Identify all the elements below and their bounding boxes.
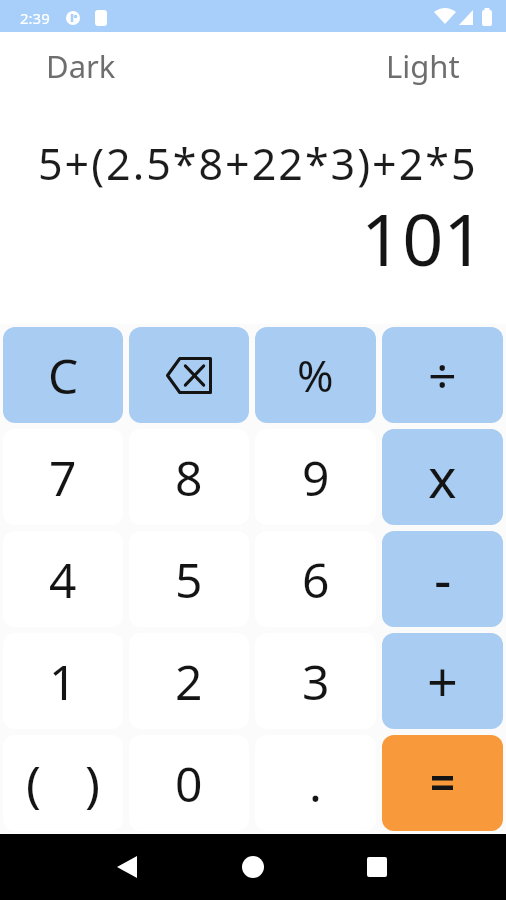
staticText: 5+(2.5*8+22*3)+2*5	[38, 134, 478, 188]
button[interactable]: Light	[370, 37, 476, 95]
button[interactable]: +	[382, 633, 503, 729]
button[interactable]	[117, 856, 137, 878]
button[interactable]	[129, 327, 249, 423]
staticText: 8	[175, 445, 203, 510]
button[interactable]: %	[255, 327, 376, 423]
staticText: 1	[49, 649, 77, 714]
button[interactable]: 7	[3, 429, 123, 525]
staticText: 2	[175, 649, 203, 714]
button[interactable]: 9	[255, 429, 376, 525]
staticText: )	[85, 749, 100, 817]
staticText: 0	[175, 751, 203, 816]
staticText: +	[427, 644, 458, 718]
button[interactable]: 8	[129, 429, 249, 525]
staticText: 101	[361, 189, 485, 273]
button[interactable]: 5	[129, 531, 249, 627]
staticText: C	[48, 343, 79, 408]
staticText: .	[309, 751, 322, 816]
staticText: %	[297, 345, 334, 405]
button[interactable]: ÷	[382, 327, 503, 423]
staticText: ÷	[428, 341, 457, 409]
staticText: -	[434, 542, 452, 616]
staticText: 7	[49, 445, 77, 510]
staticText: 6	[302, 547, 330, 612]
staticText: Light	[386, 45, 460, 87]
staticText: 5	[175, 547, 203, 612]
button[interactable]: C	[3, 327, 123, 423]
staticText: Dark	[46, 45, 116, 87]
button[interactable]	[382, 735, 503, 831]
button[interactable]: 3	[255, 633, 376, 729]
staticText: x	[428, 440, 457, 514]
button[interactable]: Dark	[30, 37, 132, 95]
button[interactable]	[242, 856, 264, 878]
button[interactable]	[367, 857, 387, 877]
staticText: 2:39	[20, 8, 50, 28]
button[interactable]: -	[382, 531, 503, 627]
staticText: 3	[302, 649, 330, 714]
staticText: 9	[302, 445, 330, 510]
button[interactable]: 2	[129, 633, 249, 729]
button[interactable]: (	[3, 735, 123, 831]
button[interactable]: .	[255, 735, 376, 831]
staticText: (	[26, 749, 41, 817]
button[interactable]: x	[382, 429, 503, 525]
button[interactable]: 1	[3, 633, 123, 729]
button[interactable]: 6	[255, 531, 376, 627]
staticText: 4	[49, 547, 77, 612]
button[interactable]: 4	[3, 531, 123, 627]
button[interactable]: 0	[129, 735, 249, 831]
